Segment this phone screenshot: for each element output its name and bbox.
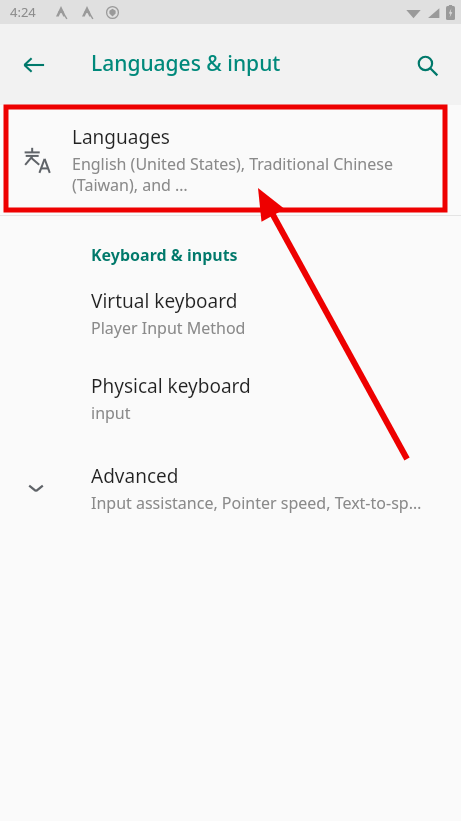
staticText: Languages xyxy=(72,124,170,150)
button[interactable]: Back xyxy=(10,41,58,89)
staticText: Advanced xyxy=(91,463,179,489)
staticText: Input assistance, Pointer speed, Text-to… xyxy=(91,492,422,514)
staticText: English (United States), Traditional Chi… xyxy=(72,153,451,196)
staticText: Player Input Method xyxy=(91,317,246,339)
staticText: Physical keyboard xyxy=(91,373,251,399)
button[interactable]: Physical keyboard xyxy=(0,373,461,424)
staticText: Languages & input xyxy=(91,49,281,78)
button[interactable]: Advanced xyxy=(0,458,461,518)
button[interactable]: Virtual keyboard xyxy=(0,288,461,339)
staticText: Virtual keyboard xyxy=(91,288,238,314)
staticText: Keyboard & inputs xyxy=(91,244,238,266)
staticText: 4:24 xyxy=(10,3,36,21)
staticText: input xyxy=(91,402,131,424)
button[interactable]: Search xyxy=(403,41,451,89)
button[interactable]: Languages xyxy=(0,105,461,215)
